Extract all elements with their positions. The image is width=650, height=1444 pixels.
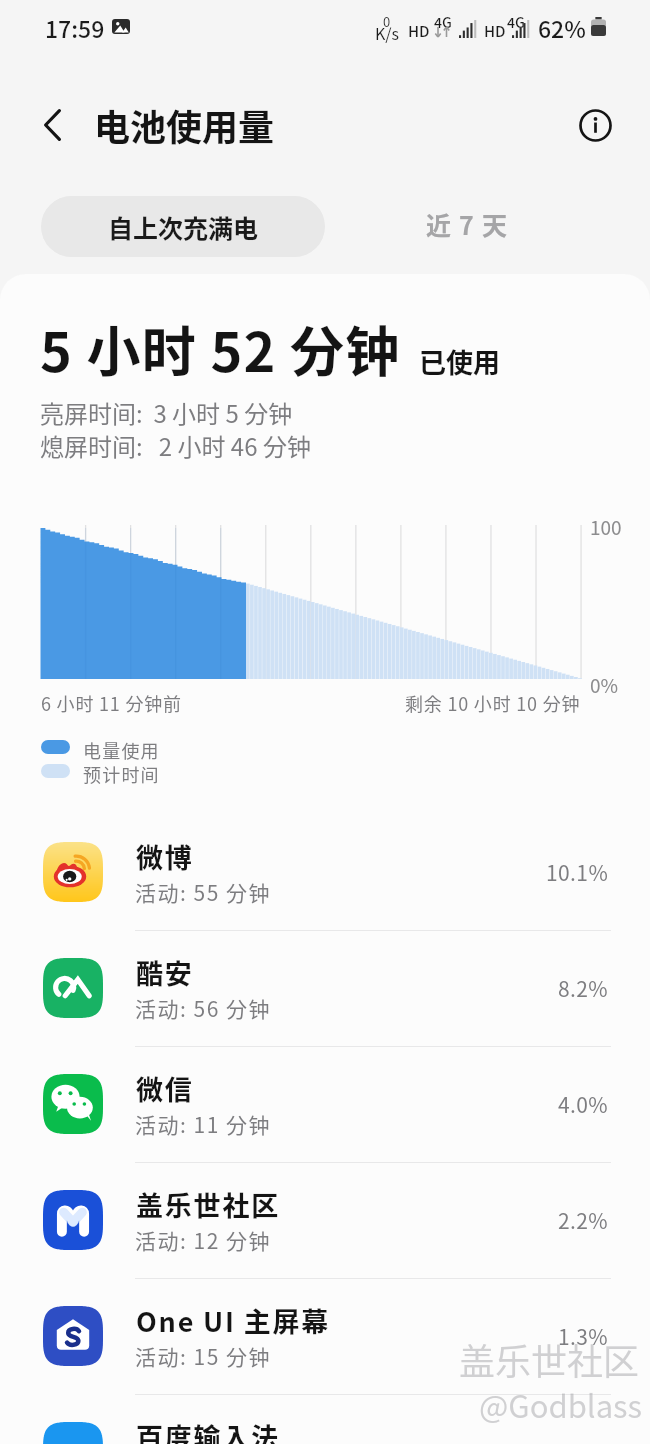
staticText: 0%	[590, 671, 619, 699]
staticText: 亮屏时间: 3 小时 5 分钟	[40, 395, 293, 430]
staticText: 自上次充满电	[108, 209, 259, 245]
staticText: 活动: 56 分钟	[135, 993, 272, 1023]
staticText: 6 小时 11 分钟前	[41, 690, 182, 716]
staticText: 微信	[136, 1069, 194, 1108]
staticText: 4G	[507, 12, 525, 32]
button[interactable]: 电池使用量	[85, 95, 295, 155]
staticText: 活动: 12 分钟	[135, 1225, 272, 1255]
staticText: K/s	[375, 21, 400, 44]
staticText: 10.1%	[546, 857, 609, 887]
button[interactable]: Back	[22, 95, 82, 155]
button[interactable]: 酷安	[0, 930, 650, 1046]
staticText: 盖乐世社区	[460, 1334, 641, 1386]
staticText: 0	[383, 12, 391, 31]
button[interactable]: 近 7 天	[330, 193, 605, 254]
staticText: 100	[590, 513, 622, 541]
staticText: HD	[408, 20, 430, 42]
staticText: 百度输入法	[136, 1417, 280, 1444]
staticText: 活动: 15 分钟	[135, 1341, 272, 1371]
staticText: @Godblass	[479, 1382, 643, 1427]
staticText: 酷安	[136, 953, 194, 992]
staticText: 微博	[136, 837, 194, 876]
staticText: 5 小时 52 分钟	[40, 309, 401, 387]
staticText: 熄屏时间: 2 小时 46 分钟	[40, 428, 311, 463]
staticText: 剩余 10 小时 10 分钟	[405, 690, 581, 716]
staticText: 电量使用	[83, 737, 160, 763]
staticText: 已使用	[419, 342, 500, 381]
button[interactable]: One UI 主屏幕	[0, 1278, 650, 1394]
staticText: 62%	[538, 11, 586, 44]
button[interactable]: 盖乐世社区	[0, 1162, 650, 1278]
button[interactable]: Information	[569, 99, 621, 151]
button[interactable]: 微信	[0, 1046, 650, 1162]
button[interactable]: 百度输入法	[0, 1394, 650, 1444]
button[interactable]: 自上次充满电	[41, 196, 325, 257]
staticText: 4.0%	[558, 1089, 609, 1119]
button[interactable]: 微博	[0, 814, 650, 930]
staticText: 17:59	[45, 11, 105, 44]
staticText: 盖乐世社区	[136, 1185, 280, 1224]
staticText: 1.3%	[558, 1321, 609, 1351]
staticText: 电池使用量	[94, 99, 275, 151]
staticText: 近 7 天	[426, 206, 509, 242]
staticText: 活动: 11 分钟	[135, 1109, 272, 1139]
staticText: 预计时间	[83, 761, 160, 787]
staticText: HD	[484, 20, 506, 42]
staticText: One UI 主屏幕	[136, 1301, 331, 1340]
staticText: 2.2%	[558, 1205, 609, 1235]
staticText: @Godblass	[480, 1383, 644, 1428]
staticText: 8.2%	[558, 973, 609, 1003]
staticText: 活动: 55 分钟	[135, 877, 272, 907]
staticText: 盖乐世社区	[459, 1333, 640, 1385]
staticText: 4G	[434, 12, 452, 32]
